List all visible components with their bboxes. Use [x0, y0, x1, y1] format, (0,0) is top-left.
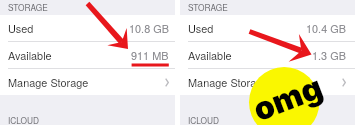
button[interactable]: Manage Storage — [180, 69, 355, 95]
staticText: 10.4 GB — [306, 20, 346, 36]
staticText: ICLOUD — [188, 114, 220, 125]
button[interactable]: Available — [0, 42, 175, 68]
button[interactable]: Used — [180, 15, 355, 41]
staticText: Used — [188, 20, 214, 36]
staticText: Manage Storage — [188, 74, 269, 90]
staticText: STORAGE — [188, 1, 228, 13]
staticText: Available — [8, 47, 52, 63]
staticText: STORAGE — [8, 1, 48, 13]
staticText: omg — [247, 67, 328, 125]
staticText: Manage Storage — [8, 74, 89, 90]
staticText: Available — [188, 47, 232, 63]
button[interactable]: Used — [0, 15, 175, 41]
button[interactable]: Available — [180, 42, 355, 68]
staticText: 1.3 GB — [312, 47, 346, 63]
other: Open — [342, 78, 346, 87]
button[interactable]: Manage Storage — [0, 69, 175, 95]
staticText: ICLOUD — [8, 114, 40, 125]
staticText: 10.8 GB — [129, 20, 169, 36]
staticText: Used — [8, 20, 34, 36]
staticText: 911 MB — [131, 47, 169, 63]
other: Open — [165, 78, 169, 87]
